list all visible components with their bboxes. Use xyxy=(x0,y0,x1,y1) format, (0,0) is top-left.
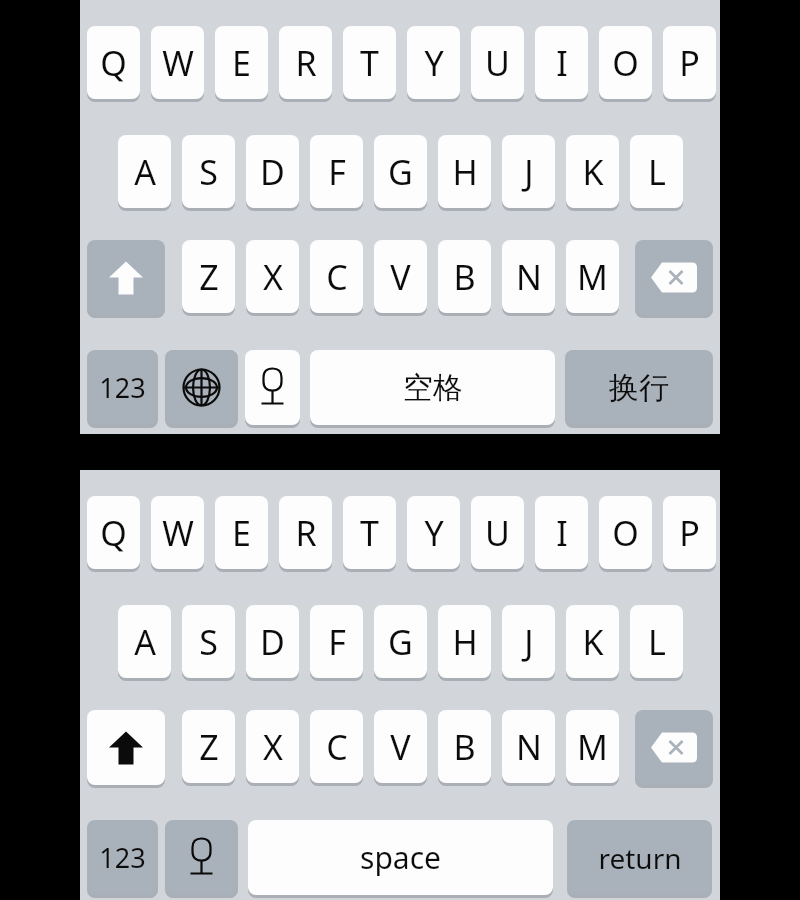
button[interactable]: H xyxy=(438,605,491,681)
button[interactable]: X xyxy=(246,710,299,786)
staticText: R xyxy=(295,510,317,556)
staticText: C xyxy=(326,724,348,770)
button[interactable]: I xyxy=(535,496,588,572)
staticText: E xyxy=(232,510,251,556)
staticText: Y xyxy=(424,40,444,86)
button[interactable]: B xyxy=(438,240,491,316)
staticText: L xyxy=(648,619,666,665)
button[interactable]: H xyxy=(438,135,491,211)
button[interactable]: C xyxy=(310,710,363,786)
button[interactable]: W xyxy=(151,496,204,572)
button[interactable]: R xyxy=(279,496,332,572)
staticText: E xyxy=(232,40,251,86)
button[interactable]: G xyxy=(374,135,427,211)
button[interactable]: T xyxy=(343,26,396,102)
button[interactable]: Switch keyboard xyxy=(165,350,238,428)
button[interactable]: L xyxy=(630,605,683,681)
button[interactable]: E xyxy=(215,26,268,102)
staticText: C xyxy=(326,254,348,300)
button[interactable]: Backspace xyxy=(635,240,713,318)
staticText: R xyxy=(295,40,317,86)
staticText: G xyxy=(388,149,413,195)
staticText: G xyxy=(388,619,413,665)
button[interactable]: C xyxy=(310,240,363,316)
button[interactable]: 123 xyxy=(87,350,158,428)
button[interactable]: U xyxy=(471,496,524,572)
button[interactable]: P xyxy=(663,496,716,572)
button[interactable]: Q xyxy=(87,496,140,572)
staticText: L xyxy=(648,149,666,195)
button[interactable]: P xyxy=(663,26,716,102)
staticText: X xyxy=(263,724,283,770)
button[interactable]: return xyxy=(567,820,712,898)
button[interactable]: V xyxy=(374,710,427,786)
staticText: D xyxy=(260,149,285,195)
staticText: S xyxy=(199,619,218,665)
button[interactable]: Dictate xyxy=(245,350,300,428)
button[interactable]: V xyxy=(374,240,427,316)
button[interactable]: M xyxy=(566,240,619,316)
button[interactable]: B xyxy=(438,710,491,786)
button[interactable]: S xyxy=(182,605,235,681)
button[interactable]: I xyxy=(535,26,588,102)
button[interactable]: X xyxy=(246,240,299,316)
staticText: F xyxy=(328,149,346,195)
button[interactable]: F xyxy=(310,605,363,681)
button[interactable]: O xyxy=(599,26,652,102)
staticText: U xyxy=(485,510,510,556)
staticText: A xyxy=(134,149,156,195)
button[interactable]: J xyxy=(502,605,555,681)
button[interactable]: R xyxy=(279,26,332,102)
button[interactable]: Y xyxy=(407,496,460,572)
button[interactable]: Z xyxy=(182,240,235,316)
staticText: D xyxy=(260,619,285,665)
staticText: return xyxy=(598,839,682,877)
button[interactable]: A xyxy=(118,605,171,681)
button[interactable]: M xyxy=(566,710,619,786)
button[interactable]: N xyxy=(502,710,555,786)
button[interactable]: Shift xyxy=(87,240,165,318)
button[interactable]: 空格 xyxy=(310,350,555,428)
staticText: K xyxy=(582,619,604,665)
button[interactable]: N xyxy=(502,240,555,316)
button[interactable]: J xyxy=(502,135,555,211)
button[interactable]: O xyxy=(599,496,652,572)
button[interactable]: D xyxy=(246,605,299,681)
staticText: J xyxy=(524,619,534,665)
staticText: H xyxy=(452,149,478,195)
staticText: Q xyxy=(100,510,127,556)
staticText: I xyxy=(556,40,568,86)
button[interactable]: K xyxy=(566,135,619,211)
button[interactable]: Y xyxy=(407,26,460,102)
button[interactable]: A xyxy=(118,135,171,211)
button[interactable]: Q xyxy=(87,26,140,102)
staticText: A xyxy=(134,619,156,665)
button[interactable]: S xyxy=(182,135,235,211)
button[interactable]: space xyxy=(248,820,553,898)
button[interactable]: Dictate xyxy=(165,820,238,898)
button[interactable]: W xyxy=(151,26,204,102)
button[interactable]: 123 xyxy=(87,820,158,898)
button[interactable]: 换行 xyxy=(565,350,713,428)
button[interactable]: L xyxy=(630,135,683,211)
button[interactable]: Backspace xyxy=(635,710,713,788)
button[interactable]: D xyxy=(246,135,299,211)
staticText: O xyxy=(612,510,639,556)
staticText: B xyxy=(453,254,476,300)
staticText: S xyxy=(199,149,218,195)
staticText: T xyxy=(360,40,379,86)
button[interactable]: T xyxy=(343,496,396,572)
staticText: P xyxy=(679,40,700,86)
button[interactable]: G xyxy=(374,605,427,681)
staticText: I xyxy=(556,510,568,556)
button[interactable]: K xyxy=(566,605,619,681)
button[interactable]: Z xyxy=(182,710,235,786)
button[interactable]: Shift xyxy=(87,710,165,788)
staticText: K xyxy=(582,149,604,195)
button[interactable]: E xyxy=(215,496,268,572)
staticText: Y xyxy=(424,510,444,556)
button[interactable]: U xyxy=(471,26,524,102)
staticText: N xyxy=(516,254,542,300)
button[interactable]: F xyxy=(310,135,363,211)
staticText: X xyxy=(263,254,283,300)
